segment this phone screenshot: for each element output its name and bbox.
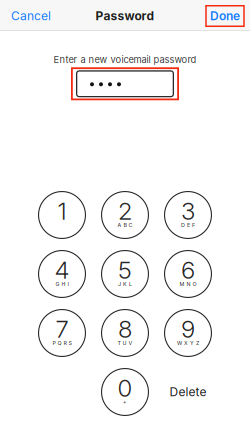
button[interactable]: 2 <box>101 191 149 239</box>
button[interactable]: Cancel <box>0 2 51 30</box>
staticText: 4 <box>54 255 69 284</box>
button[interactable]: 6 <box>164 250 212 298</box>
button[interactable]: 0 <box>101 368 149 416</box>
button[interactable]: 8 <box>101 309 149 357</box>
staticText: 9 <box>181 314 195 343</box>
staticText: 7 <box>55 314 68 343</box>
staticText: 6 <box>181 255 195 284</box>
staticText: A B C <box>117 222 132 228</box>
staticText: Password <box>95 9 154 23</box>
staticText: Delete <box>169 385 206 399</box>
staticText: W X Y Z <box>177 340 199 346</box>
staticText: G H I <box>55 281 68 287</box>
staticText: Enter a new voicemail password <box>53 54 196 65</box>
button[interactable]: 4 <box>38 250 86 298</box>
button[interactable]: 5 <box>101 250 149 298</box>
staticText: Cancel <box>11 9 51 23</box>
staticText: 8 <box>118 314 132 343</box>
button[interactable]: 9 <box>164 309 212 357</box>
staticText: T U V <box>117 340 132 346</box>
button[interactable]: Delete <box>164 368 212 416</box>
staticText: D E F <box>181 222 195 228</box>
button[interactable]: 1 <box>38 191 86 239</box>
staticText: Done <box>210 9 240 23</box>
button[interactable]: 7 <box>38 309 86 357</box>
staticText: P Q R S <box>52 340 71 346</box>
staticText: 1 <box>57 196 66 225</box>
staticText: 3 <box>181 196 195 225</box>
staticText: + <box>123 399 127 405</box>
staticText: 5 <box>118 255 132 284</box>
button[interactable]: 3 <box>164 191 212 239</box>
staticText: M N O <box>179 281 196 287</box>
staticText: 0 <box>117 373 132 402</box>
staticText: 2 <box>118 196 132 225</box>
staticText: J K L <box>118 281 132 287</box>
button[interactable]: Done <box>206 6 250 26</box>
